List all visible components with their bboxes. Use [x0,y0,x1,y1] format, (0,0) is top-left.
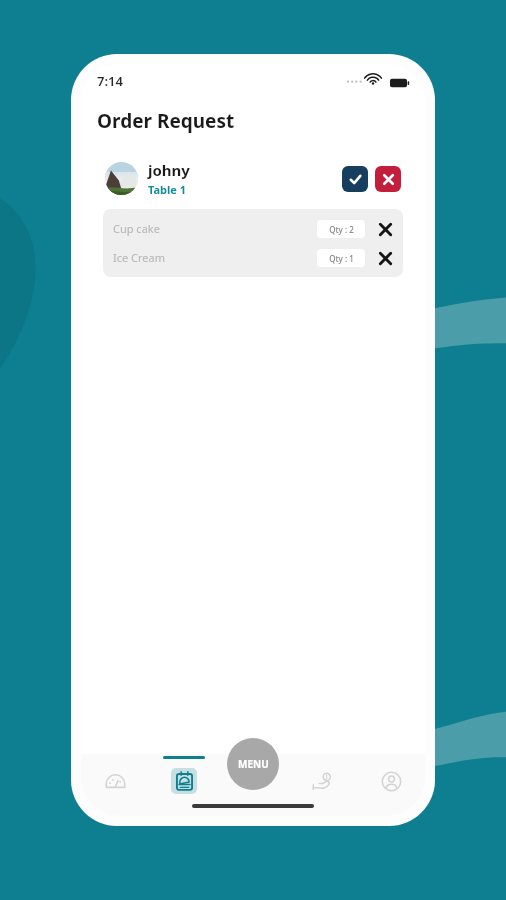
button[interactable]: MENU [227,738,279,790]
staticText: Order Request [97,108,235,134]
button[interactable]: Payments [287,756,356,816]
staticText: 7:14 [97,72,123,90]
button[interactable]: Remove Ice Cream [375,248,395,268]
button[interactable]: Orders [149,756,218,816]
staticText: Qty : 1 [329,253,354,264]
button[interactable]: Remove Cup cake [375,219,395,239]
staticText: Qty : 2 [329,224,354,235]
staticText: MENU [238,757,269,771]
button[interactable]: Dashboard [81,756,149,816]
staticText: Ice Cream [113,250,317,265]
button[interactable]: Cup cake [103,214,403,243]
button[interactable]: Accept order [342,166,368,192]
button[interactable]: Ice Cream [103,243,403,272]
button[interactable]: Profile [356,756,425,816]
staticText: Cup cake [113,221,317,236]
staticText: johny [148,160,190,180]
staticText: Table 1 [148,182,187,197]
button[interactable]: Reject order [375,166,401,192]
